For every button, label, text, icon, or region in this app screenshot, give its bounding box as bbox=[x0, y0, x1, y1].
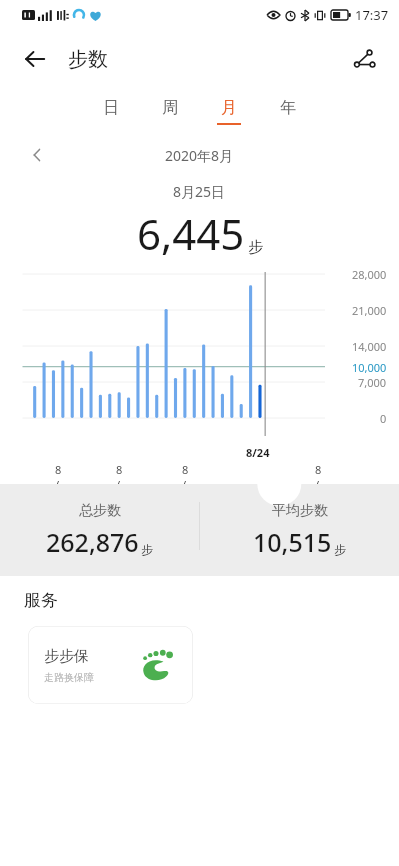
staticText: 走路换保障 bbox=[44, 671, 94, 684]
staticText: 17:37 bbox=[355, 6, 389, 24]
button[interactable]: 步步保 bbox=[28, 626, 193, 704]
staticText: 21,000 bbox=[352, 303, 387, 318]
button[interactable]: 日 bbox=[96, 98, 126, 125]
staticText: 8/24 bbox=[246, 445, 270, 460]
staticText: 步 bbox=[141, 542, 153, 557]
staticText: 2020年8月 bbox=[165, 146, 234, 165]
staticText: 日 bbox=[103, 98, 119, 118]
staticText: 周 bbox=[162, 98, 178, 118]
staticText: 平均步数 bbox=[272, 502, 328, 520]
button[interactable]: Previous month bbox=[20, 138, 54, 172]
button[interactable]: 月 bbox=[214, 98, 244, 125]
staticText: 步 bbox=[248, 238, 263, 257]
staticText: 0 bbox=[380, 411, 387, 426]
staticText: 月 bbox=[221, 98, 237, 118]
staticText: 28,000 bbox=[352, 267, 387, 282]
staticText: 步数 bbox=[68, 47, 108, 72]
button[interactable]: 年 bbox=[273, 98, 303, 125]
button[interactable]: Share bbox=[343, 38, 385, 80]
staticText: 7,000 bbox=[358, 375, 387, 390]
staticText: 步 bbox=[334, 542, 346, 557]
staticText: 10,515 bbox=[253, 525, 332, 559]
staticText: 8月25日 bbox=[173, 182, 226, 201]
staticText: 服务 bbox=[24, 590, 58, 611]
staticText: 年 bbox=[280, 98, 296, 118]
staticText: 总步数 bbox=[79, 502, 121, 520]
staticText: 14,000 bbox=[352, 339, 387, 354]
staticText: 262,876 bbox=[46, 525, 139, 559]
staticText: 6,445 bbox=[137, 205, 245, 262]
staticText: 10,000 bbox=[352, 360, 387, 375]
button[interactable]: Back bbox=[14, 38, 56, 80]
staticText: 步步保 bbox=[44, 647, 89, 666]
button[interactable]: 周 bbox=[155, 98, 185, 125]
